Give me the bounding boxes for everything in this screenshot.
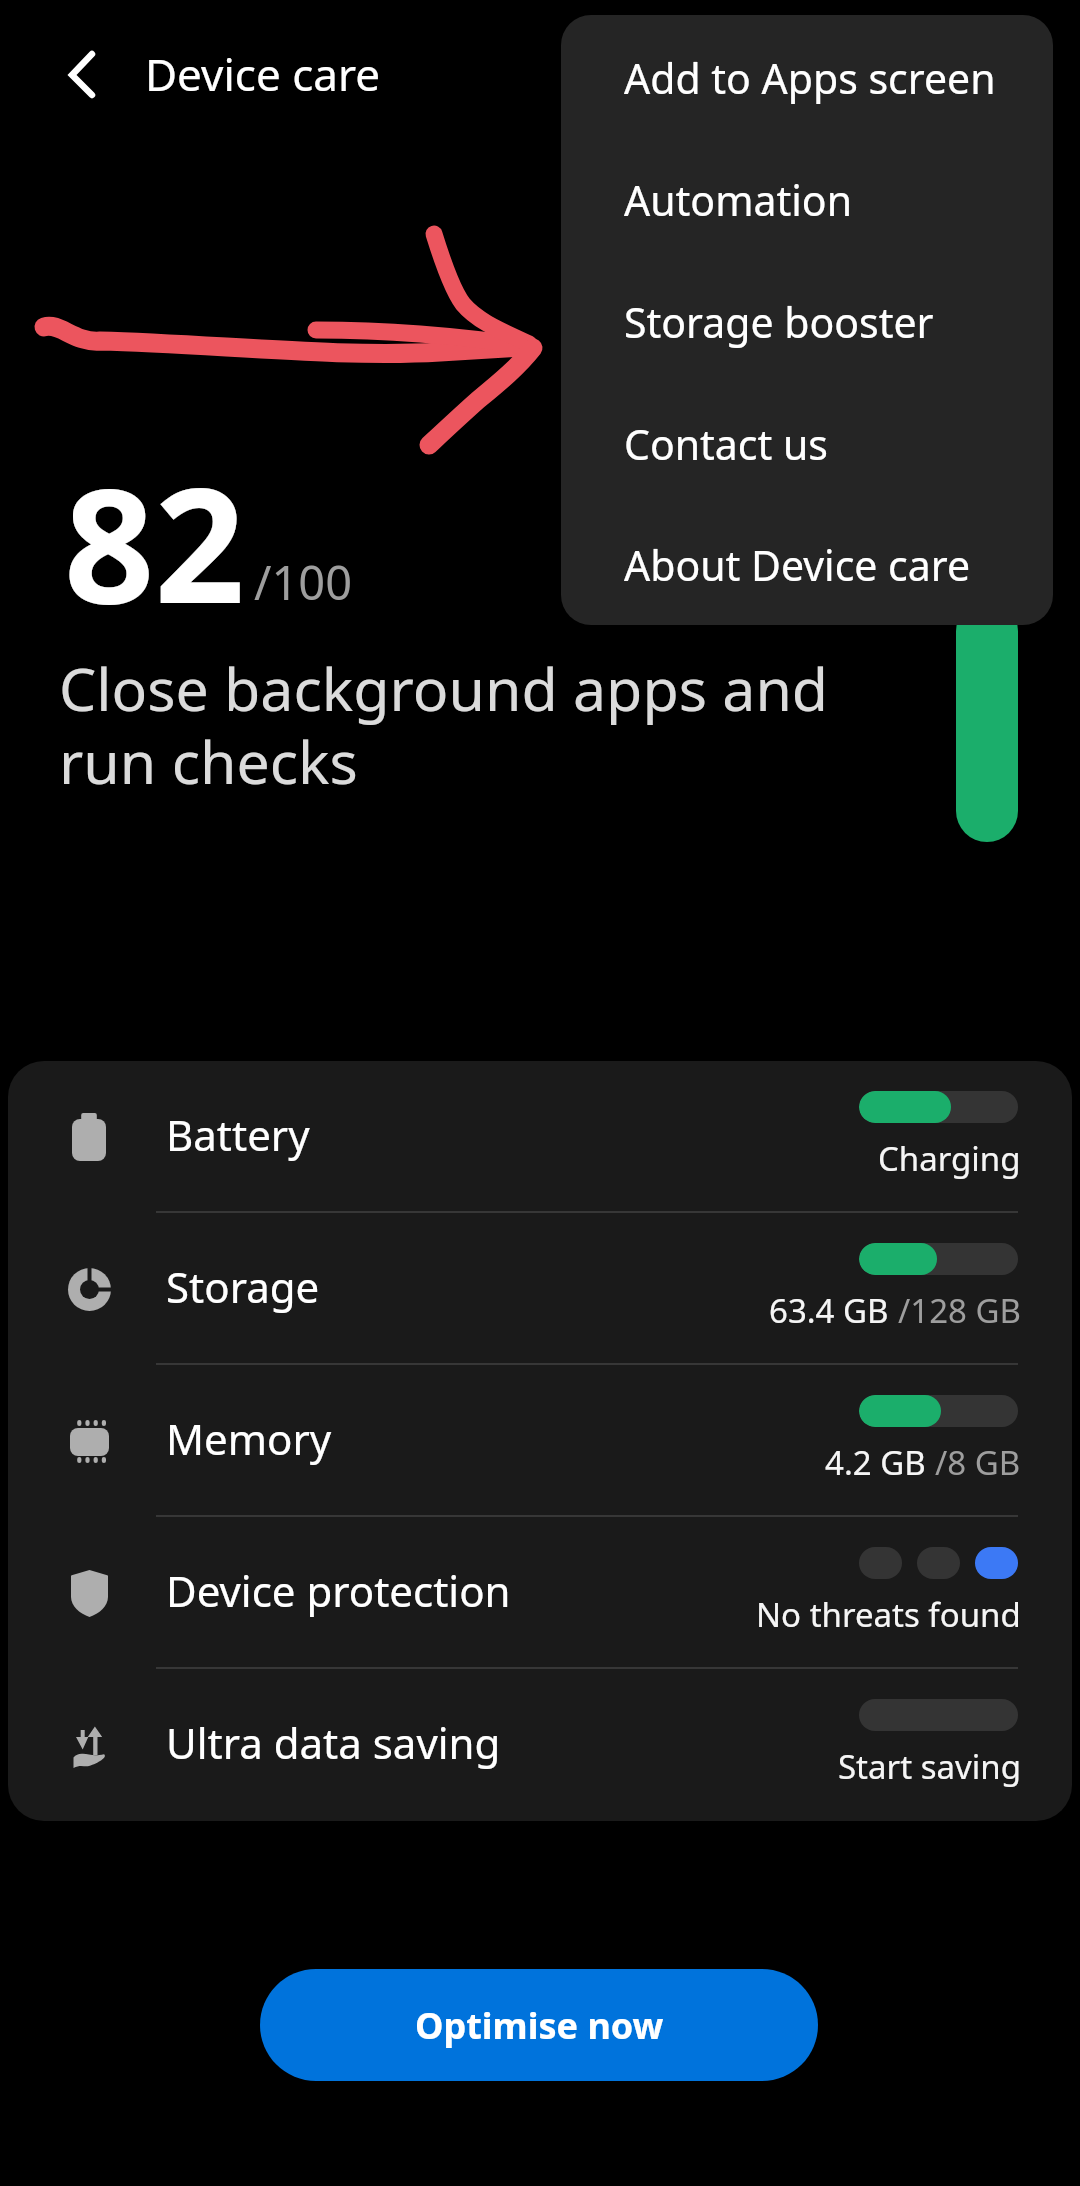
staticText: Add to Apps screen [624, 50, 996, 106]
staticText: Device protection [166, 1562, 511, 1619]
staticText: About Device care [624, 537, 971, 593]
button[interactable]: About Device care [561, 505, 1053, 625]
staticText: 4.2 GB [825, 1440, 935, 1485]
staticText: Storage [166, 1258, 320, 1315]
staticText: Ultra data saving [166, 1714, 501, 1771]
staticText: 63.4 GB [769, 1288, 898, 1333]
staticText: Battery [166, 1106, 310, 1163]
staticText: No threats found [756, 1592, 1021, 1637]
staticText: Charging [878, 1136, 1021, 1181]
staticText: Contact us [624, 416, 828, 472]
button[interactable]: Optimise now [260, 1969, 818, 2081]
button[interactable]: Ultra data saving [8, 1669, 1072, 1821]
staticText: Storage booster [624, 294, 934, 350]
staticText: Automation [624, 172, 853, 228]
staticText: Device care [145, 44, 381, 104]
button[interactable]: Storage [8, 1213, 1072, 1365]
staticText: Optimise now [415, 2001, 664, 2050]
staticText: /8 GB [935, 1440, 1021, 1485]
button[interactable]: Add to Apps screen [561, 17, 1053, 139]
button[interactable]: Storage booster [561, 261, 1053, 383]
staticText: Close background apps and run checks [59, 648, 829, 801]
button[interactable]: Battery [8, 1061, 1072, 1213]
button[interactable]: Device protection [8, 1517, 1072, 1669]
button[interactable]: Contact us [561, 383, 1053, 505]
staticText: /128 GB [898, 1288, 1021, 1333]
staticText: Memory [166, 1410, 332, 1467]
staticText: Start saving [838, 1744, 1021, 1789]
button[interactable]: Back [37, 21, 125, 125]
button[interactable]: Memory [8, 1365, 1072, 1517]
staticText: /100 [254, 550, 353, 614]
staticText: 82 [64, 434, 245, 649]
button[interactable]: Automation [561, 139, 1053, 261]
